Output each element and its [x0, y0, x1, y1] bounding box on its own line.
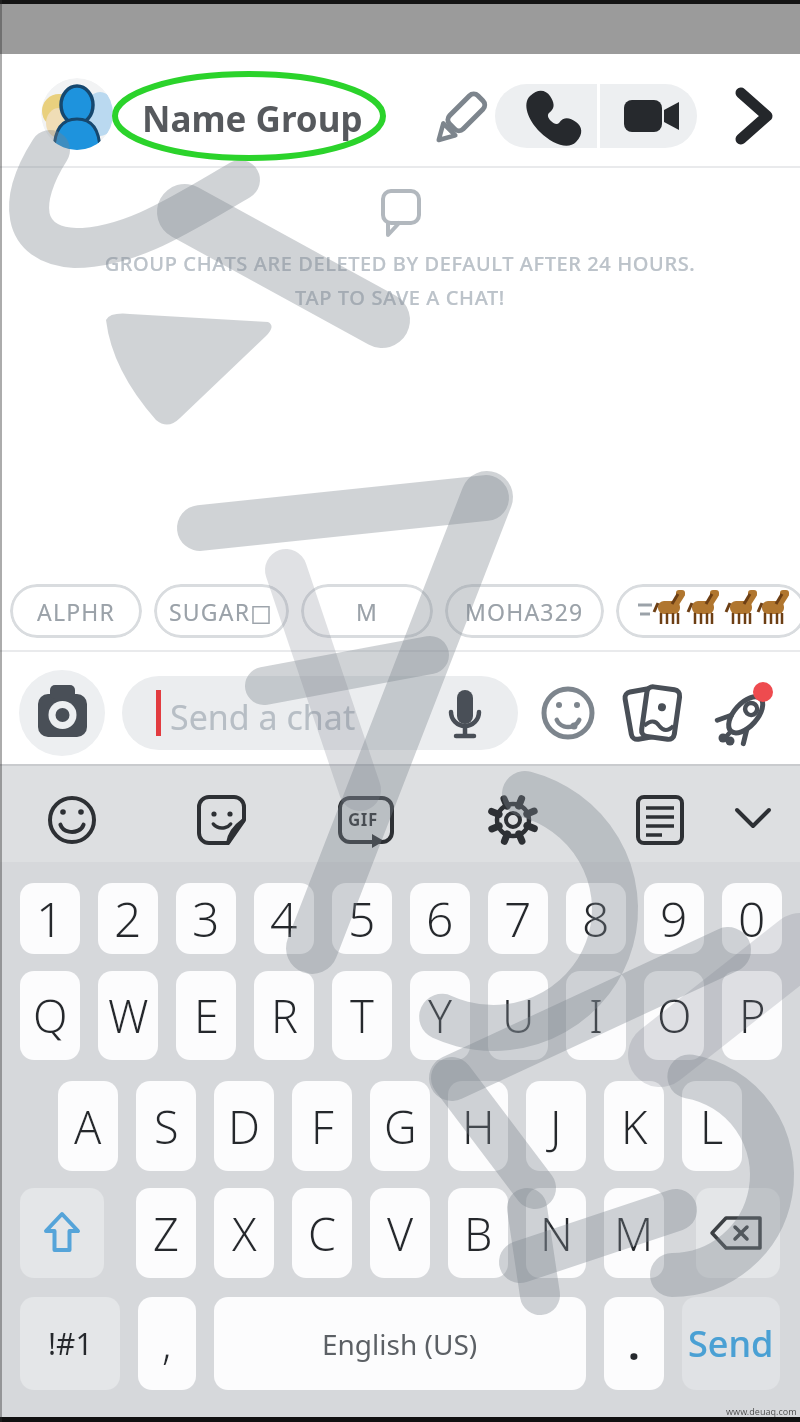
button[interactable]: 2: [98, 883, 158, 954]
staticText: V: [387, 1203, 414, 1264]
staticText: F: [311, 1096, 334, 1157]
button[interactable]: [19, 670, 105, 756]
button[interactable]: [600, 84, 697, 148]
staticText: T: [350, 985, 374, 1046]
button[interactable]: ALPHR: [10, 584, 142, 638]
staticText: 2: [114, 886, 142, 951]
staticText: B: [464, 1203, 493, 1264]
staticText: 3: [192, 886, 220, 951]
button[interactable]: O: [644, 971, 704, 1060]
staticText: U: [502, 985, 535, 1046]
button[interactable]: G: [370, 1081, 430, 1171]
button[interactable]: U: [488, 971, 548, 1060]
button[interactable]: C: [292, 1188, 352, 1278]
button[interactable]: N: [526, 1188, 586, 1278]
button[interactable]: I: [566, 971, 626, 1060]
staticText: Send a chat: [170, 694, 356, 740]
button[interactable]: F: [292, 1081, 352, 1171]
button[interactable]: [41, 78, 113, 150]
button[interactable]: E: [176, 971, 236, 1060]
button[interactable]: [696, 1188, 780, 1278]
button[interactable]: [122, 676, 518, 750]
button[interactable]: .: [604, 1297, 664, 1390]
button[interactable]: 1: [20, 883, 80, 954]
staticText: I: [589, 985, 603, 1046]
staticText: SUGAR□: [169, 596, 274, 627]
staticText: H: [462, 1096, 495, 1157]
button[interactable]: Q: [20, 971, 80, 1060]
staticText: E: [194, 985, 219, 1046]
button[interactable]: L: [682, 1081, 742, 1171]
button[interactable]: [728, 792, 780, 848]
button[interactable]: [616, 584, 800, 638]
button[interactable]: [625, 685, 681, 741]
staticText: Send: [688, 1319, 774, 1368]
button[interactable]: [485, 792, 541, 848]
button[interactable]: Y: [410, 971, 470, 1060]
button[interactable]: ,: [138, 1297, 196, 1390]
button[interactable]: 0: [722, 883, 782, 954]
staticText: M: [614, 1203, 654, 1264]
button[interactable]: [194, 792, 250, 848]
button[interactable]: M: [301, 584, 433, 638]
button[interactable]: [540, 685, 596, 741]
staticText: G: [384, 1096, 417, 1157]
button[interactable]: [44, 792, 100, 848]
button[interactable]: B: [448, 1188, 508, 1278]
button[interactable]: P: [722, 971, 782, 1060]
button[interactable]: M: [604, 1188, 664, 1278]
button[interactable]: [631, 792, 687, 848]
button[interactable]: 8: [566, 883, 626, 954]
staticText: 6: [426, 886, 454, 951]
button[interactable]: 4: [254, 883, 314, 954]
staticText: A: [74, 1096, 102, 1157]
button[interactable]: R: [254, 971, 314, 1060]
button[interactable]: K: [604, 1081, 664, 1171]
button[interactable]: H: [448, 1081, 508, 1171]
staticText: N: [540, 1203, 573, 1264]
button[interactable]: [728, 88, 783, 146]
button[interactable]: 3: [176, 883, 236, 954]
button[interactable]: [715, 685, 777, 741]
button[interactable]: Send: [682, 1297, 780, 1390]
staticText: .: [628, 1315, 640, 1372]
button[interactable]: X: [214, 1188, 274, 1278]
staticText: 1: [36, 886, 64, 951]
staticText: Name Group: [142, 95, 363, 143]
button[interactable]: J: [526, 1081, 586, 1171]
staticText: C: [308, 1203, 337, 1264]
staticText: ALPHR: [37, 596, 116, 627]
button[interactable]: T: [332, 971, 392, 1060]
staticText: Z: [153, 1203, 179, 1264]
button[interactable]: 6: [410, 883, 470, 954]
staticText: 9: [660, 886, 688, 951]
staticText: O: [657, 985, 692, 1046]
button[interactable]: Z: [136, 1188, 196, 1278]
staticText: www.deuaq.com: [726, 1405, 797, 1417]
button[interactable]: 5: [332, 883, 392, 954]
staticText: 4: [270, 886, 298, 951]
staticText: D: [228, 1096, 260, 1157]
staticText: ,: [162, 1315, 172, 1372]
button[interactable]: SUGAR□: [154, 584, 289, 638]
button[interactable]: English (US): [214, 1297, 586, 1390]
button[interactable]: W: [98, 971, 158, 1060]
button[interactable]: [337, 792, 393, 848]
staticText: MOHA329: [465, 596, 584, 627]
staticText: GROUP CHATS ARE DELETED BY DEFAULT AFTER…: [0, 250, 800, 277]
staticText: X: [232, 1203, 257, 1264]
button[interactable]: MOHA329: [445, 584, 604, 638]
button[interactable]: !#1: [20, 1297, 120, 1390]
button[interactable]: V: [370, 1188, 430, 1278]
staticText: L: [700, 1096, 724, 1157]
button[interactable]: 9: [644, 883, 704, 954]
button[interactable]: [432, 88, 492, 146]
button[interactable]: D: [214, 1081, 274, 1171]
button[interactable]: A: [58, 1081, 118, 1171]
button[interactable]: 7: [488, 883, 548, 954]
staticText: J: [550, 1096, 562, 1157]
button[interactable]: S: [136, 1081, 196, 1171]
button[interactable]: [495, 84, 597, 148]
button[interactable]: [20, 1188, 104, 1278]
staticText: P: [739, 985, 766, 1046]
